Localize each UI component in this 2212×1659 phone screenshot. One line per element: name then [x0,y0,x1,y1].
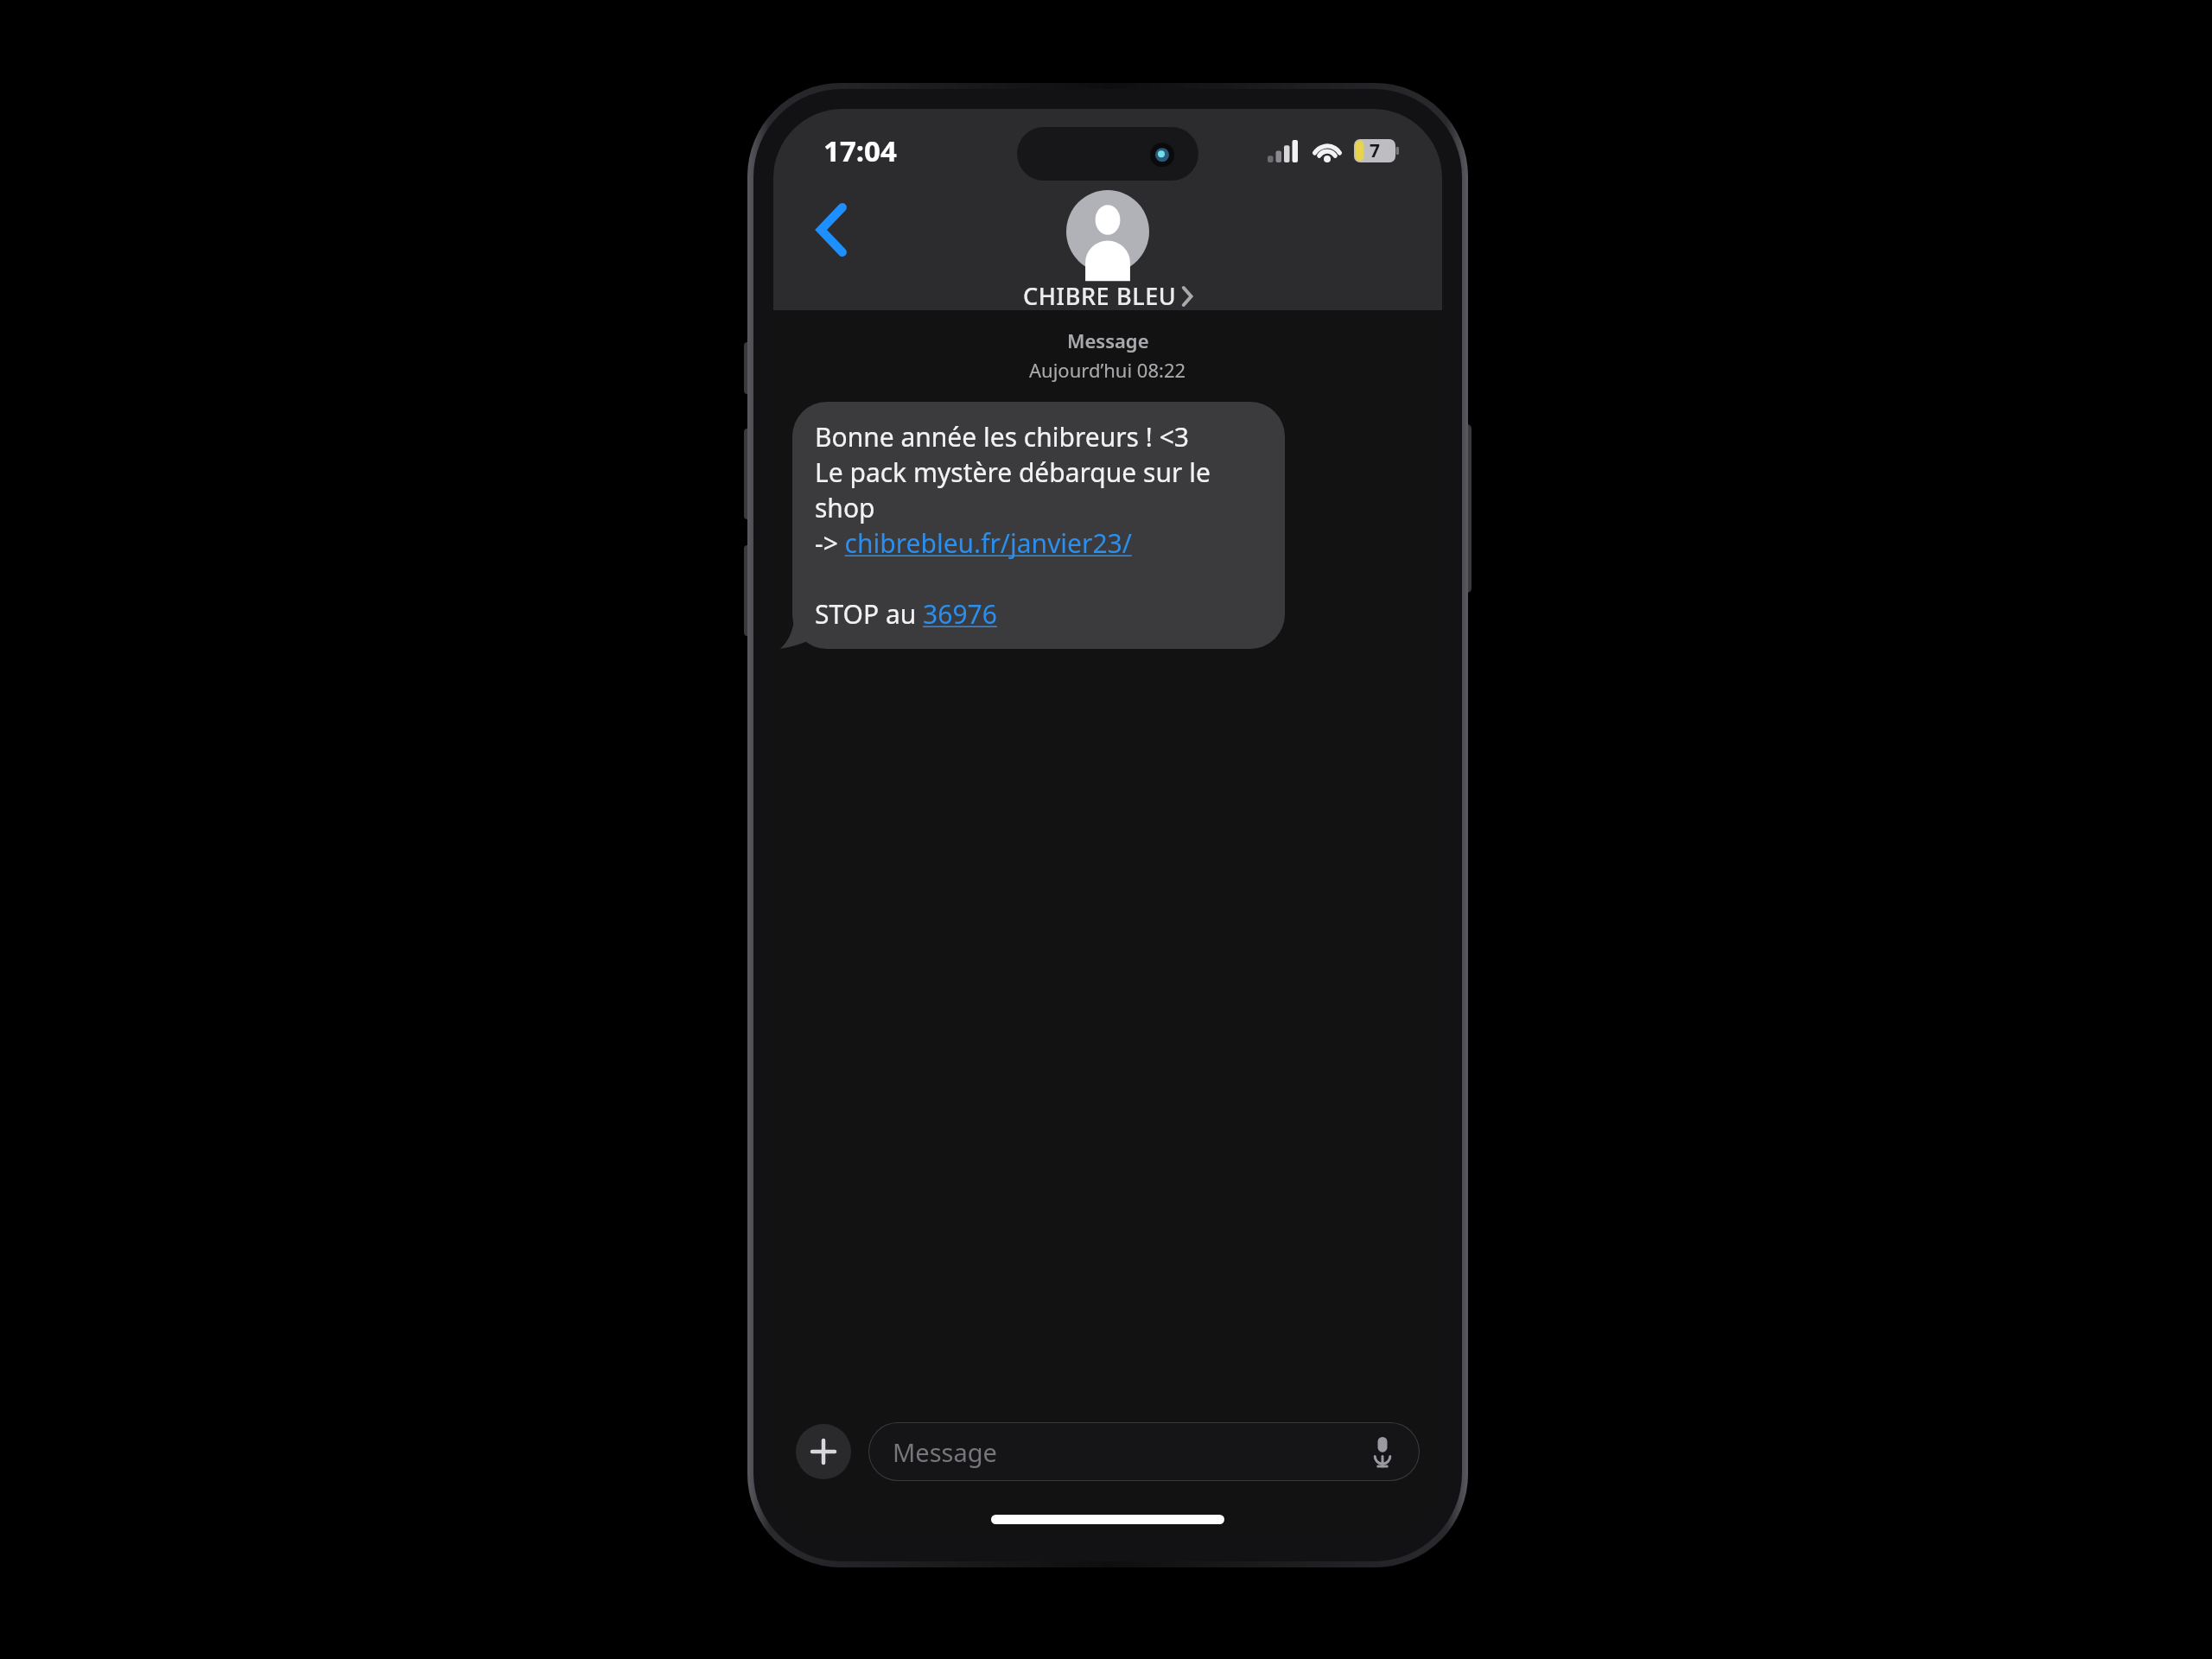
button[interactable]: CHIBRE BLEU [1023,190,1192,312]
button[interactable]: Bonne année les chibreurs ! <3 Le pack m… [792,402,1285,649]
staticText: Bonne année les chibreurs ! <3 Le pack m… [815,419,1262,632]
staticText: Message [1067,327,1149,353]
staticText: Aujourd’hui 08:22 [1029,357,1186,383]
button[interactable]: Add attachment [796,1424,851,1479]
staticText: CHIBRE BLEU [1023,280,1177,312]
staticText: 17:04 [823,131,897,170]
button[interactable]: Message [868,1422,1420,1481]
staticText: Message [893,1435,997,1469]
button[interactable]: Back [803,200,861,259]
button[interactable]: Voice message [1363,1432,1402,1471]
staticText: 7 [1370,138,1381,163]
